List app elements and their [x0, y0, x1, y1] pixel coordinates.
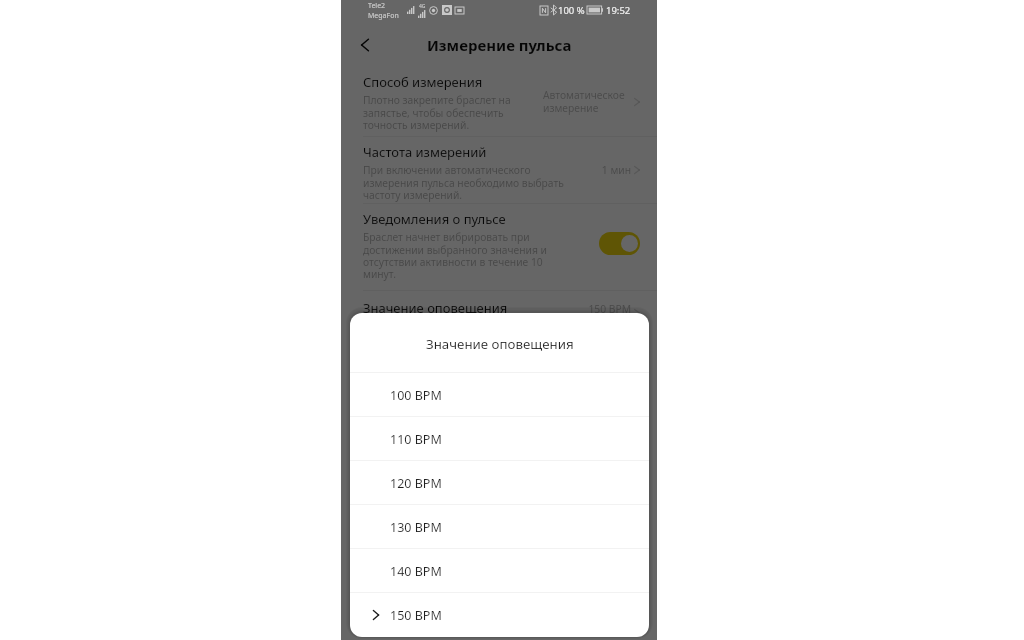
staticText: Измерение пульса [427, 35, 572, 55]
staticText: MegaFon [368, 11, 399, 21]
staticText: При включении автоматического измерения … [363, 163, 568, 202]
staticText: Плотно закрепите браслет на запястье, чт… [363, 93, 549, 132]
staticText: 140 BPM [390, 563, 442, 580]
button[interactable]: Toggle heart-rate alerts [599, 232, 640, 255]
staticText: 4G [419, 3, 426, 10]
staticText: 19:52 [606, 4, 631, 17]
staticText: Значение оповещения [426, 335, 574, 353]
staticText: 100 BPM [390, 387, 442, 404]
button[interactable]: 120 BPM [350, 461, 649, 504]
button[interactable]: 130 BPM [350, 505, 649, 548]
staticText: 120 BPM [390, 475, 442, 492]
staticText: 1 мин [591, 163, 631, 177]
staticText: Способ измерения [363, 73, 483, 91]
button[interactable]: Уведомления о пульсе [341, 204, 657, 290]
button[interactable]: 100 BPM [350, 373, 649, 416]
staticText: 130 BPM [390, 519, 442, 536]
staticText: 150 BPM [583, 302, 631, 316]
staticText: Автоматическое измерение [543, 88, 631, 115]
staticText: Tele2 [368, 1, 386, 11]
staticText: 100 % [558, 4, 585, 17]
button[interactable]: 150 BPM [350, 593, 649, 636]
button[interactable]: Способ измерения [341, 67, 657, 136]
staticText: Значение оповещения [363, 299, 508, 317]
staticText: 150 BPM [390, 607, 442, 624]
staticText: 110 BPM [390, 431, 442, 448]
button[interactable]: Частота измерений [341, 137, 657, 203]
staticText: Частота измерений [363, 143, 487, 161]
button[interactable]: Back [350, 30, 380, 60]
button[interactable]: Значение оповещения [341, 291, 657, 335]
button[interactable]: 110 BPM [350, 417, 649, 460]
staticText: Браслет начнет вибрировать при достижени… [363, 230, 563, 281]
staticText: Уведомления о пульсе [363, 210, 506, 228]
button[interactable]: 140 BPM [350, 549, 649, 592]
